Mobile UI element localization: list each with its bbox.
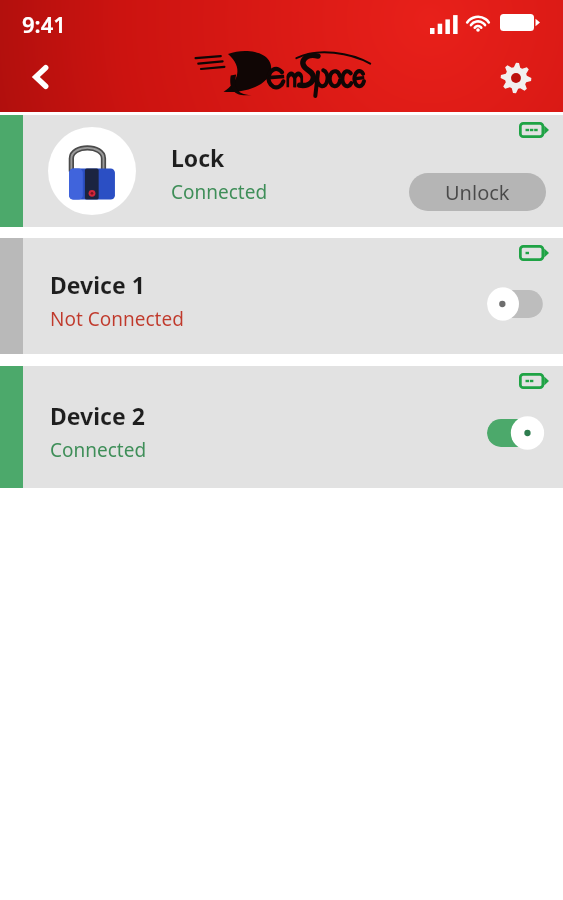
button[interactable]: Device 1 [0, 238, 563, 354]
staticText: Not Connected [50, 306, 184, 332]
button[interactable]: Unlock [409, 173, 546, 211]
button[interactable]: Device 2 [0, 366, 563, 488]
staticText: Lock [171, 142, 225, 173]
button[interactable]: Back [16, 52, 66, 102]
button[interactable]: Toggle device off [487, 287, 549, 321]
staticText: Connected [171, 179, 268, 205]
button[interactable]: Toggle device on [487, 416, 549, 450]
staticText: Device 2 [50, 400, 145, 431]
staticText: Unlock [445, 179, 510, 206]
staticText: Connected [50, 437, 147, 463]
button[interactable] [192, 42, 372, 96]
staticText: 9:41 [22, 9, 66, 39]
staticText: Device 1 [50, 269, 145, 300]
button[interactable]: Settings [493, 55, 539, 101]
button[interactable]: Lock [0, 115, 563, 227]
